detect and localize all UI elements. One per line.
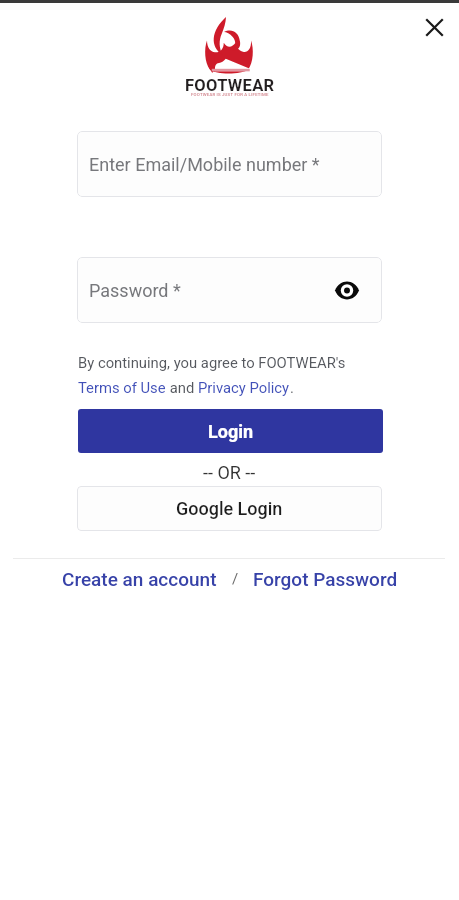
staticText: FOOTWEAR	[185, 76, 275, 95]
button[interactable]: Google Login	[77, 486, 382, 531]
staticText: Google Login	[176, 498, 283, 519]
staticText: .	[290, 379, 294, 396]
button[interactable]: Password *	[77, 257, 382, 323]
staticText: Password *	[89, 280, 181, 301]
button[interactable]: Show password	[333, 276, 361, 304]
button[interactable]: Login	[78, 409, 383, 453]
button[interactable]: Forgot Password	[253, 568, 398, 590]
staticText: By continuing, you agree to FOOTWEAR's	[78, 354, 346, 371]
button[interactable]: Privacy Policy	[198, 379, 290, 396]
button[interactable]: Create an account	[62, 568, 217, 590]
staticText: FOOTWEAR IS JUST FOR A LIFETIME	[191, 92, 269, 97]
staticText: /	[217, 570, 253, 588]
staticText: Login	[208, 421, 254, 442]
staticText: and	[166, 379, 198, 396]
button[interactable]: Enter Email/Mobile number *	[77, 131, 382, 197]
staticText: Enter Email/Mobile number *	[89, 154, 320, 175]
button[interactable]: Close	[417, 10, 451, 44]
staticText: -- OR --	[203, 462, 256, 483]
button[interactable]: Terms of Use	[78, 379, 166, 396]
